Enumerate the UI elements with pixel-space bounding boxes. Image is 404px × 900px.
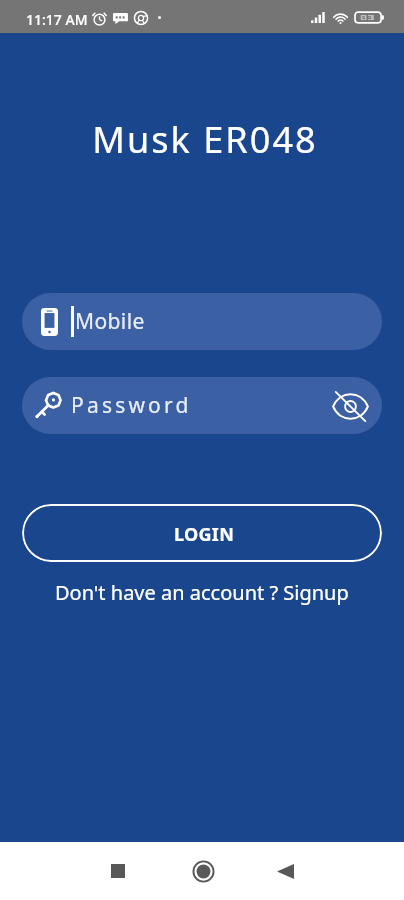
staticText: 11:17 AM (26, 10, 88, 29)
staticText: LOGIN (174, 522, 235, 547)
staticText: Mobile (75, 307, 145, 336)
button[interactable]: Recents (80, 842, 156, 900)
button[interactable]: Home (165, 842, 241, 900)
button[interactable]: LOGIN (22, 504, 382, 562)
staticText: Password (71, 391, 192, 420)
staticText: Don't have an account ? Signup (55, 579, 349, 606)
button[interactable]: Mobile (22, 293, 382, 350)
button[interactable]: Don't have an account ? Signup (0, 578, 404, 606)
button[interactable]: Show password (331, 387, 369, 425)
staticText: Musk ER048 (3, 115, 404, 164)
button[interactable]: Back (247, 842, 323, 900)
button[interactable]: Password (22, 377, 382, 434)
